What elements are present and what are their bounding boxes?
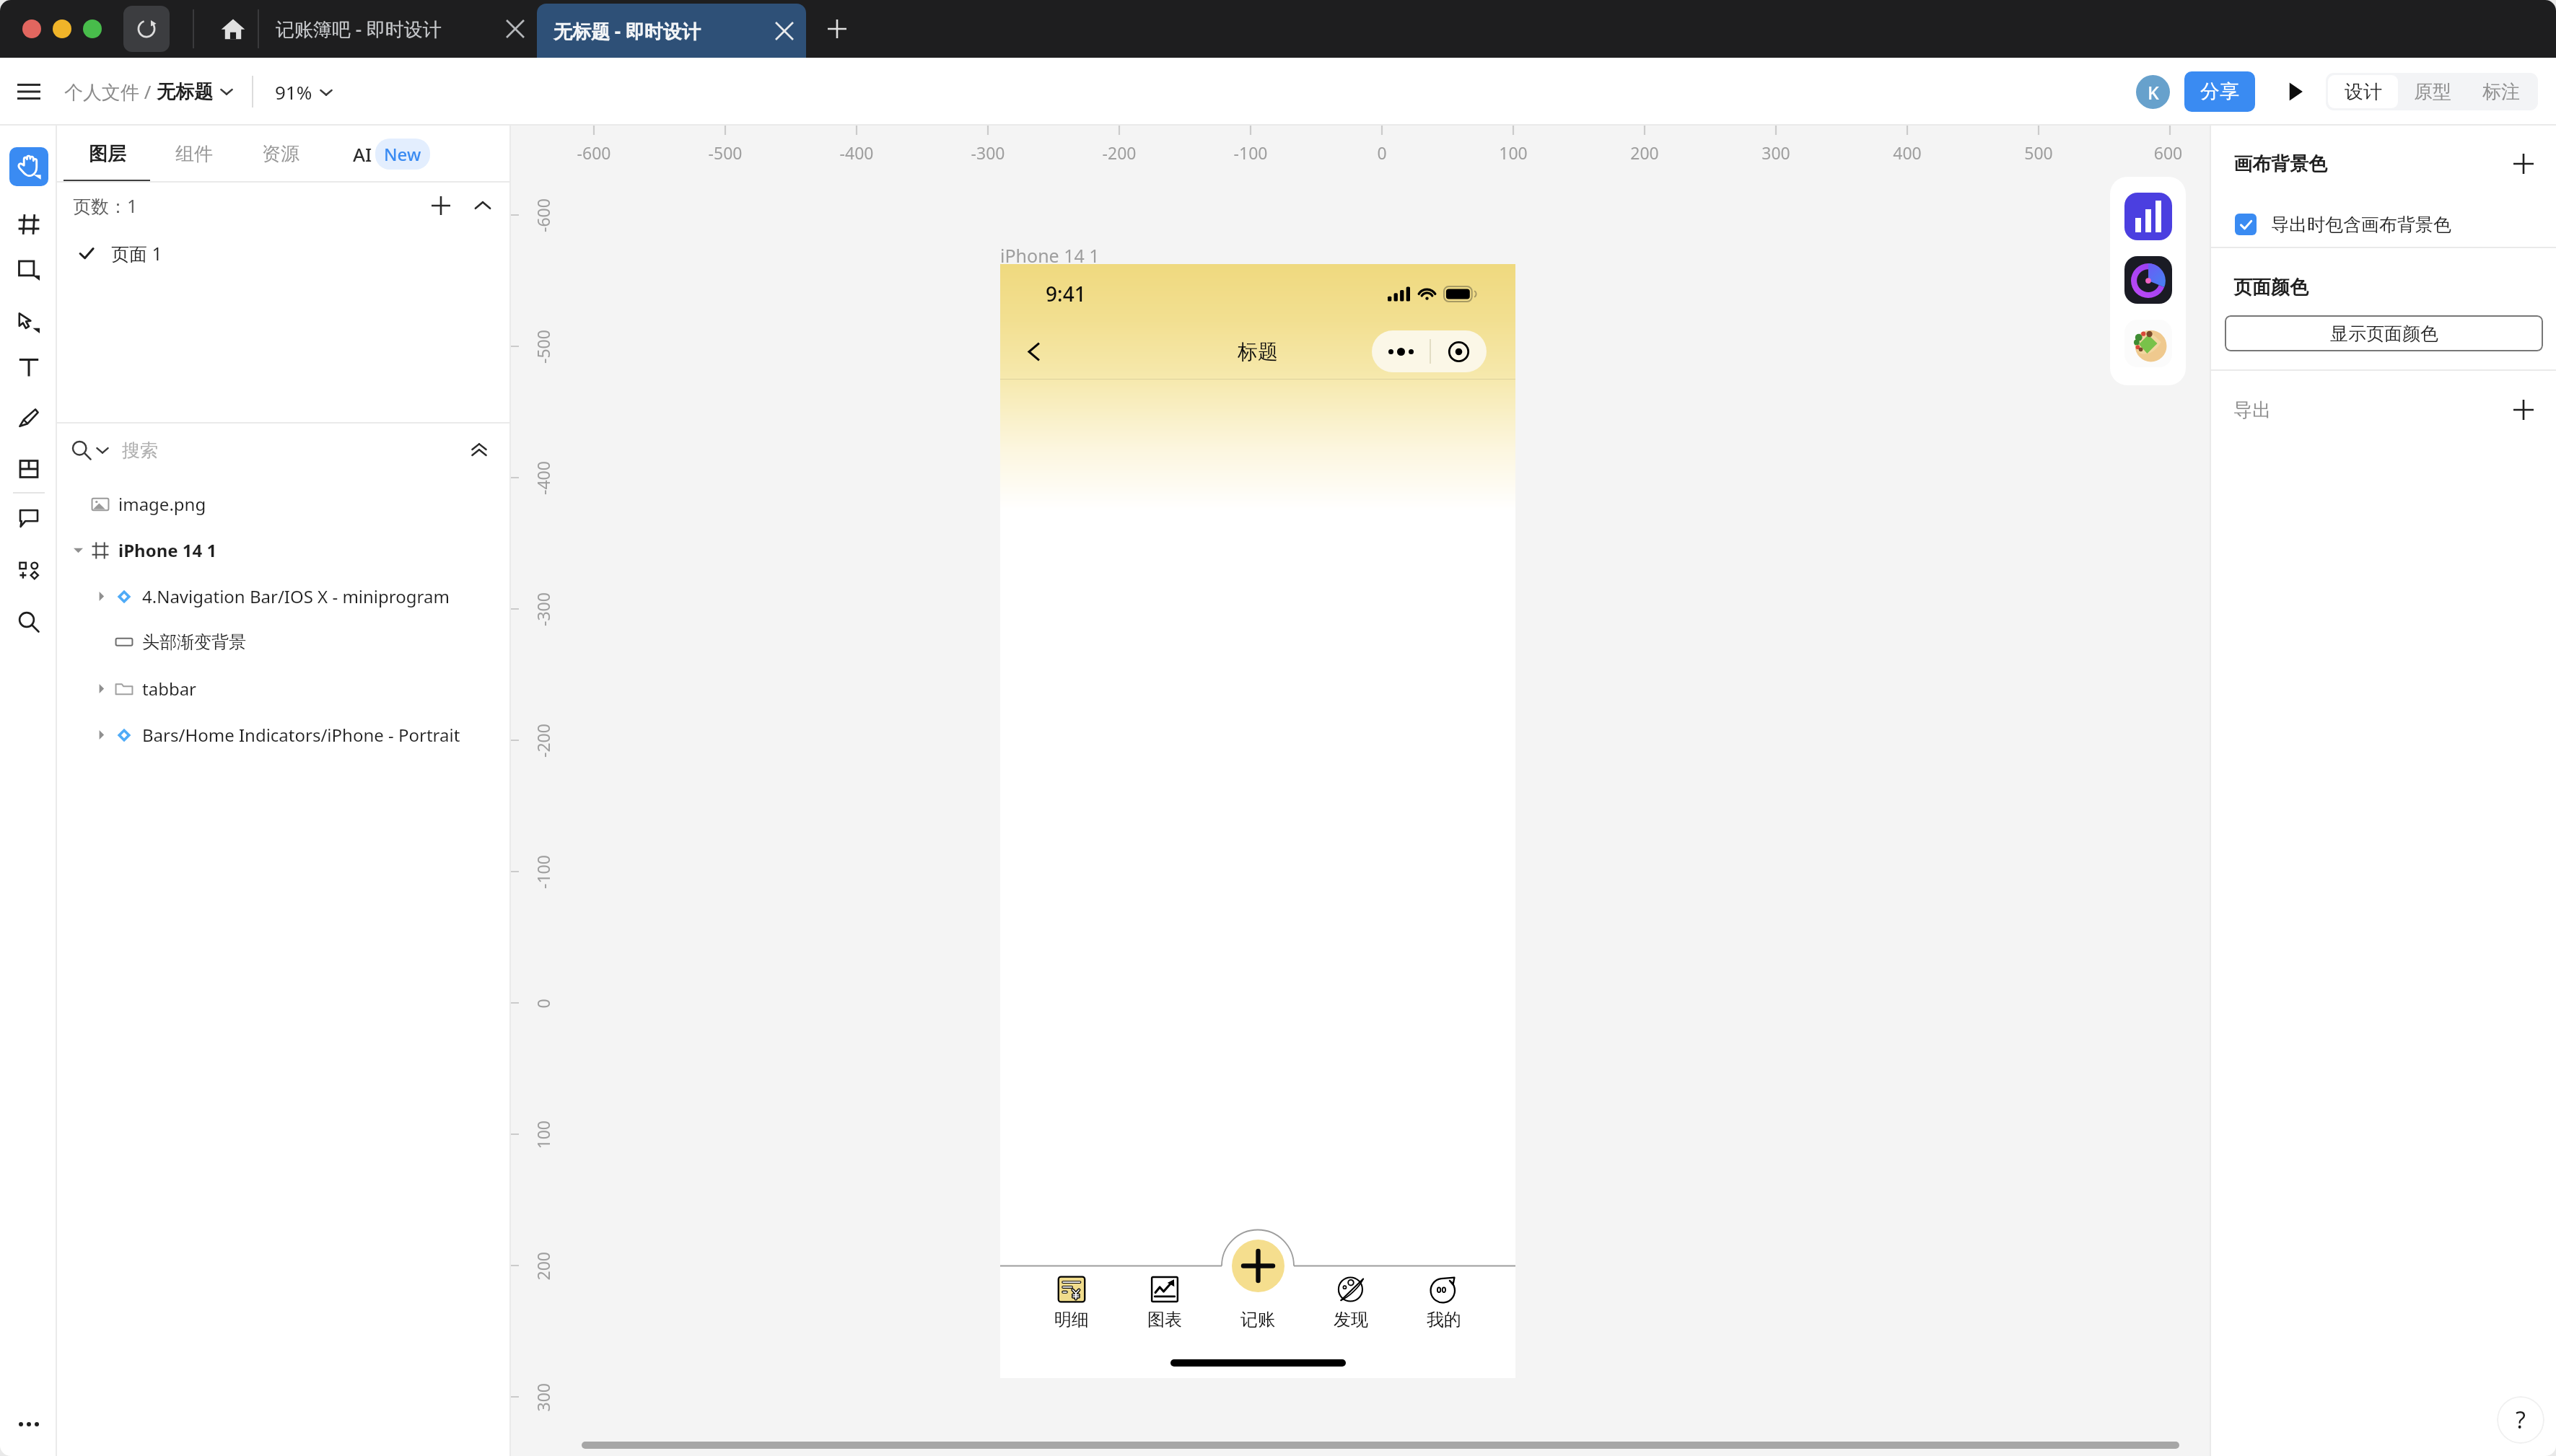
staticText: -500 xyxy=(532,330,554,364)
staticText: 页数：1 xyxy=(73,193,138,218)
button[interactable]: Bars/Home Indicators/iPhone - Portrait xyxy=(57,711,511,758)
button[interactable]: More options xyxy=(1372,330,1430,372)
staticText: 图表 xyxy=(1147,1309,1182,1330)
button[interactable]: Rectangle tool xyxy=(11,252,47,288)
button[interactable]: 分享 xyxy=(2184,71,2255,112)
staticText: 标注 xyxy=(2482,80,2520,104)
button[interactable]: Account xyxy=(2136,75,2170,109)
button[interactable]: Collapse all layers xyxy=(463,434,495,466)
button[interactable]: 我的 xyxy=(1397,1276,1490,1330)
button[interactable]: Reload xyxy=(123,6,170,52)
button[interactable]: More tools xyxy=(11,1406,47,1442)
staticText: 导出 xyxy=(2233,398,2271,422)
button[interactable]: Hand tool xyxy=(9,147,48,186)
staticText: -100 xyxy=(1207,141,1294,164)
button[interactable]: 91% xyxy=(275,79,333,105)
button[interactable]: Menu xyxy=(12,74,46,109)
button[interactable]: Add page xyxy=(424,189,458,222)
staticText: 600 xyxy=(2127,141,2210,164)
button[interactable]: image.png xyxy=(57,481,511,527)
staticText: 200 xyxy=(531,1251,554,1280)
staticText: AI xyxy=(353,141,372,167)
button[interactable]: 个人文件 / xyxy=(64,79,233,105)
button[interactable]: Window control xyxy=(22,19,41,38)
button[interactable]: Window control xyxy=(83,19,102,38)
staticText: 页面 1 xyxy=(111,241,162,266)
staticText: 500 xyxy=(1995,141,2082,164)
button[interactable]: 图层 xyxy=(80,126,135,183)
staticText: -400 xyxy=(532,461,554,495)
button[interactable]: Home xyxy=(215,11,251,47)
staticText: 原型 xyxy=(2414,80,2451,104)
button[interactable]: Search xyxy=(11,604,47,640)
button[interactable]: 无标题 - 即时设计 xyxy=(537,4,806,58)
button[interactable]: 原型 xyxy=(2398,75,2467,108)
button[interactable]: Comment xyxy=(11,500,47,536)
button[interactable]: 标注 xyxy=(2467,75,2536,108)
button[interactable]: Close tab xyxy=(499,13,531,45)
staticText: iPhone 14 1 xyxy=(118,538,217,562)
button[interactable]: Close tab xyxy=(769,15,800,47)
staticText: 9:41 xyxy=(1046,280,1086,307)
staticText: 记账 xyxy=(1240,1309,1275,1330)
button[interactable]: Slice tool xyxy=(11,451,47,487)
button[interactable]: Chart plugin xyxy=(2124,193,2172,240)
staticText: 个人文件 / xyxy=(64,79,157,105)
staticText: 搜索 xyxy=(122,439,158,462)
staticText: -300 xyxy=(532,592,554,626)
staticText: -100 xyxy=(532,855,554,889)
button[interactable]: 导出时包含画布背景色 xyxy=(2235,202,2556,247)
button[interactable]: 记账 xyxy=(1211,1276,1304,1330)
staticText: -200 xyxy=(1076,141,1163,164)
button[interactable]: New tab xyxy=(819,11,855,47)
button[interactable]: Taco plugin xyxy=(2124,320,2172,367)
button[interactable]: Data plugin xyxy=(2124,256,2172,304)
button[interactable]: 图表 xyxy=(1118,1276,1211,1330)
button[interactable]: Preview xyxy=(2279,76,2311,108)
button[interactable]: Help xyxy=(2497,1396,2544,1444)
staticText: 100 xyxy=(1470,141,1557,164)
button[interactable]: 页面 1 xyxy=(57,233,511,273)
button[interactable]: 4.Navigation Bar/IOS X - miniprogram xyxy=(57,573,511,619)
button[interactable]: Add record xyxy=(1232,1240,1284,1292)
button[interactable]: iPhone 14 1 xyxy=(57,527,511,573)
button[interactable]: AI xyxy=(353,126,430,183)
button[interactable]: Back xyxy=(1017,334,1051,369)
button[interactable]: Close mini program xyxy=(1431,330,1487,372)
button[interactable]: Text tool xyxy=(11,350,47,386)
button[interactable]: 发现 xyxy=(1304,1276,1397,1330)
staticText: ? xyxy=(2516,1404,2526,1436)
staticText: -400 xyxy=(813,141,900,164)
button[interactable]: Window control xyxy=(53,19,71,38)
staticText: 300 xyxy=(531,1383,554,1412)
button[interactable]: Components xyxy=(11,552,47,588)
button[interactable]: Collapse pages xyxy=(466,189,499,222)
staticText: Bars/Home Indicators/iPhone - Portrait xyxy=(142,723,460,747)
button[interactable]: Add export setting xyxy=(2507,393,2540,426)
button[interactable]: tabbar xyxy=(57,665,511,711)
button[interactable]: 显示页面颜色 xyxy=(2225,315,2543,351)
button[interactable]: Pen tool xyxy=(11,304,47,341)
button[interactable]: 头部渐变背景 xyxy=(57,619,511,665)
staticText: -200 xyxy=(532,724,554,758)
staticText: 4.Navigation Bar/IOS X - miniprogram xyxy=(142,584,450,608)
button[interactable]: 记账簿吧 - 即时设计 xyxy=(259,0,537,58)
button[interactable]: Frame tool xyxy=(11,206,47,242)
button[interactable]: Add canvas background colour xyxy=(2507,147,2540,180)
button[interactable]: 设计 xyxy=(2328,75,2398,108)
staticText: 200 xyxy=(1601,141,1688,164)
staticText: 标题 xyxy=(1238,339,1278,364)
staticText: 记账簿吧 - 即时设计 xyxy=(276,16,442,42)
staticText: 0 xyxy=(1339,141,1425,164)
button[interactable]: 组件 xyxy=(167,126,222,183)
staticText: 0 xyxy=(531,998,554,1008)
staticText: 明细 xyxy=(1054,1309,1089,1330)
button[interactable]: 资源 xyxy=(253,126,308,183)
staticText: 导出时包含画布背景色 xyxy=(2271,214,2451,236)
button[interactable]: 明细 xyxy=(1025,1276,1118,1330)
button[interactable]: Knife tool xyxy=(11,400,47,437)
staticText: 91% xyxy=(275,79,312,105)
staticText: New xyxy=(384,142,421,166)
staticText: 显示页面颜色 xyxy=(2330,323,2438,345)
staticText: 图层 xyxy=(89,142,126,166)
